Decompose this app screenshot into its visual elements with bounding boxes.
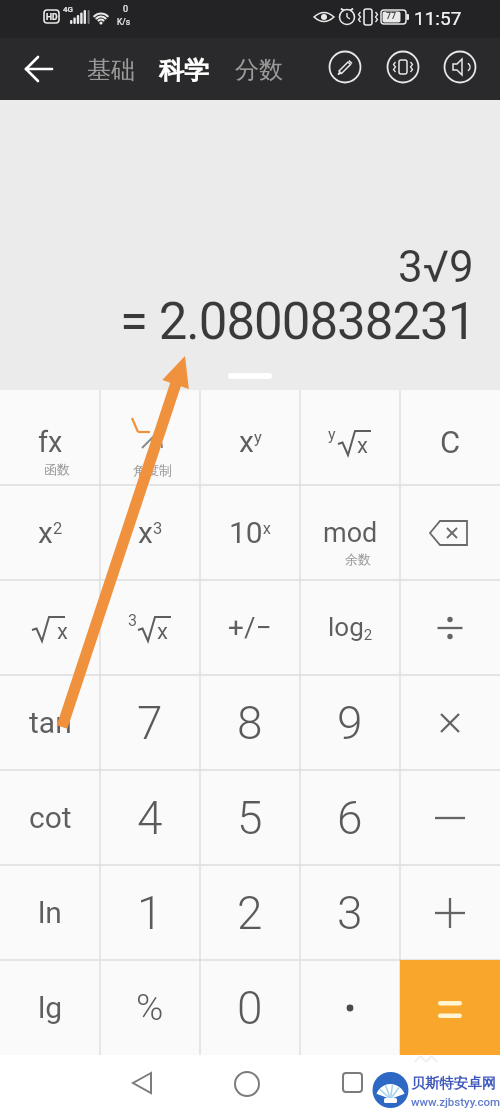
staticText: 4G <box>63 5 73 14</box>
button[interactable] <box>400 675 500 770</box>
staticText: y <box>328 425 336 444</box>
button[interactable] <box>300 960 400 1055</box>
button[interactable]: 科学 <box>150 52 218 88</box>
button[interactable]: % <box>100 960 200 1055</box>
button[interactable]: xy <box>200 390 300 485</box>
staticText: +/− <box>228 611 272 644</box>
button[interactable]: 9 <box>300 675 400 770</box>
button[interactable]: 8 <box>200 675 300 770</box>
staticText: tan <box>29 705 72 740</box>
staticText: log2 <box>328 612 373 643</box>
button[interactable]: fx <box>0 390 100 485</box>
staticText: 基础 <box>87 55 135 85</box>
button[interactable]: 7 <box>100 675 200 770</box>
staticText: 5 <box>237 791 263 845</box>
button[interactable]: log2 <box>300 580 400 675</box>
button[interactable] <box>400 865 500 960</box>
staticText: 科学 <box>159 55 209 86</box>
button[interactable]: 分数 <box>226 52 292 88</box>
button[interactable]: 3 <box>100 580 200 675</box>
staticText: x <box>357 433 368 459</box>
button[interactable]: 角度制 <box>100 390 200 485</box>
button[interactable] <box>400 485 500 580</box>
button[interactable]: ln <box>0 865 100 960</box>
staticText: 2 <box>237 886 263 940</box>
staticText: 0 <box>123 4 129 15</box>
button[interactable] <box>16 54 60 86</box>
staticText: 0 <box>237 981 263 1035</box>
staticText: K/s <box>117 17 131 27</box>
staticText: 11:57 <box>414 7 462 29</box>
button[interactable]: tan <box>0 675 100 770</box>
staticText: cot <box>29 800 72 835</box>
button[interactable]: mod <box>300 485 400 580</box>
button[interactable]: 2 <box>200 865 300 960</box>
button[interactable] <box>400 960 500 1055</box>
staticText: x <box>157 619 168 645</box>
staticText: xy <box>239 424 262 459</box>
staticText: 函数 <box>44 461 70 477</box>
staticText: 分数 <box>235 55 283 85</box>
button[interactable]: 3 <box>300 865 400 960</box>
button[interactable]: 基础 <box>80 52 142 88</box>
staticText: mod <box>323 517 378 549</box>
staticText: 3 <box>337 886 363 940</box>
button[interactable] <box>120 1061 164 1105</box>
button[interactable] <box>385 49 421 85</box>
staticText: 角度制 <box>133 462 172 478</box>
staticText: lg <box>38 990 63 1025</box>
button[interactable]: 6 <box>300 770 400 865</box>
button[interactable]: +/− <box>200 580 300 675</box>
staticText: % <box>136 986 164 1029</box>
button[interactable]: lg <box>0 960 100 1055</box>
staticText: 10x <box>229 515 271 550</box>
staticText: 7 <box>137 696 163 750</box>
staticText: x <box>57 619 68 645</box>
button[interactable]: cot <box>0 770 100 865</box>
staticText: = 2.0800838231 <box>120 292 476 348</box>
button[interactable]: 1 <box>100 865 200 960</box>
staticText: 3 <box>128 611 137 630</box>
button[interactable]: x2 <box>0 485 100 580</box>
staticText: 3√9 <box>398 241 474 291</box>
button[interactable]: C <box>400 390 500 485</box>
button[interactable]: 5 <box>200 770 300 865</box>
staticText: x2 <box>38 515 63 550</box>
button[interactable] <box>400 580 500 675</box>
button[interactable] <box>442 49 478 85</box>
staticText: C <box>440 424 461 460</box>
button[interactable] <box>330 1061 374 1105</box>
button[interactable]: 10x <box>200 485 300 580</box>
button[interactable]: x <box>0 580 100 675</box>
button[interactable]: 0 <box>200 960 300 1055</box>
button[interactable]: x3 <box>100 485 200 580</box>
staticText: x3 <box>138 515 163 550</box>
staticText: ln <box>38 895 62 930</box>
staticText: 9 <box>337 696 363 750</box>
staticText: 余数 <box>345 551 371 567</box>
staticText: 贝斯特安卓网 <box>411 1074 497 1092</box>
button[interactable] <box>225 1061 269 1105</box>
button[interactable]: y <box>300 390 400 485</box>
button[interactable]: 4 <box>100 770 200 865</box>
staticText: fx <box>38 425 63 459</box>
button[interactable] <box>327 49 363 85</box>
staticText: 8 <box>237 696 263 750</box>
staticText: HD <box>46 12 58 22</box>
staticText: 77 <box>386 11 397 22</box>
staticText: 1 <box>137 886 163 940</box>
button[interactable] <box>400 770 500 865</box>
staticText: 6 <box>337 791 363 845</box>
staticText: 4 <box>137 791 163 845</box>
staticText: www.zjbstyy.com <box>411 1095 500 1108</box>
